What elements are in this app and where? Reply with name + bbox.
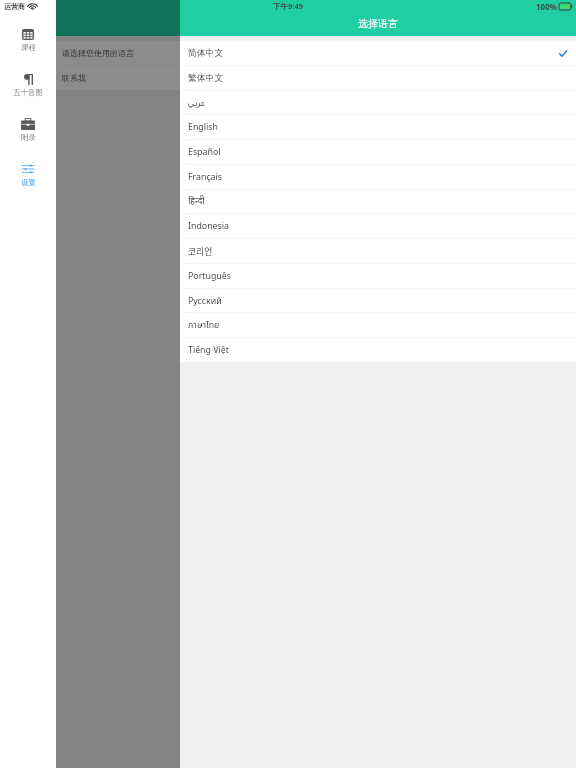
button[interactable]: 请选择您使用的语言 — [56, 41, 180, 65]
staticText: 课程 — [21, 43, 36, 52]
button[interactable]: 附录 — [0, 107, 56, 152]
staticText: 下午9:49 — [273, 1, 303, 11]
button[interactable]: 五十音图 — [0, 62, 56, 107]
button[interactable]: 联系我 — [56, 66, 180, 90]
button[interactable]: हिन्दी — [180, 190, 576, 213]
staticText: 请选择您使用的语言 — [62, 48, 134, 58]
button[interactable]: Tiếng Việt — [180, 338, 576, 362]
button[interactable]: Русский — [180, 289, 576, 312]
button[interactable]: عربي — [180, 91, 576, 114]
staticText: 코리언 — [188, 245, 213, 258]
staticText: 设置 — [21, 178, 36, 187]
button[interactable]: 繁体中文 — [180, 66, 576, 90]
button[interactable]: 设置 — [0, 152, 56, 197]
other: Selected — [559, 50, 567, 57]
other: Wi-Fi signal — [28, 3, 37, 10]
staticText: Русский — [188, 295, 222, 307]
button[interactable]: 简体中文 — [180, 41, 576, 65]
staticText: 运营商 — [4, 2, 25, 11]
button[interactable]: Français — [180, 165, 576, 189]
staticText: 附录 — [21, 133, 36, 142]
staticText: Português — [188, 270, 231, 282]
button[interactable]: Español — [180, 140, 576, 164]
staticText: 简体中文 — [188, 48, 224, 59]
staticText: 联系我 — [62, 73, 86, 83]
button[interactable]: Português — [180, 264, 576, 288]
staticText: عربي — [188, 97, 206, 109]
staticText: ภาษาไทย — [188, 319, 220, 331]
button[interactable]: 코리언 — [180, 239, 576, 263]
staticText: Indonesia — [188, 220, 229, 232]
button[interactable]: Indonesia — [180, 214, 576, 238]
staticText: English — [188, 121, 218, 133]
staticText: 选择语言 — [358, 17, 398, 30]
button[interactable]: ภาษาไทย — [180, 313, 576, 337]
staticText: 繁体中文 — [188, 73, 224, 84]
staticText: Français — [188, 171, 223, 183]
staticText: 五十音图 — [13, 88, 43, 97]
button[interactable]: 课程 — [0, 17, 56, 62]
other: Battery 100 percent, charging — [559, 3, 573, 10]
staticText: Tiếng Việt — [188, 344, 229, 356]
button[interactable]: English — [180, 115, 576, 139]
staticText: Español — [188, 146, 221, 158]
staticText: 100% — [536, 1, 557, 12]
staticText: हिन्दी — [188, 196, 205, 207]
